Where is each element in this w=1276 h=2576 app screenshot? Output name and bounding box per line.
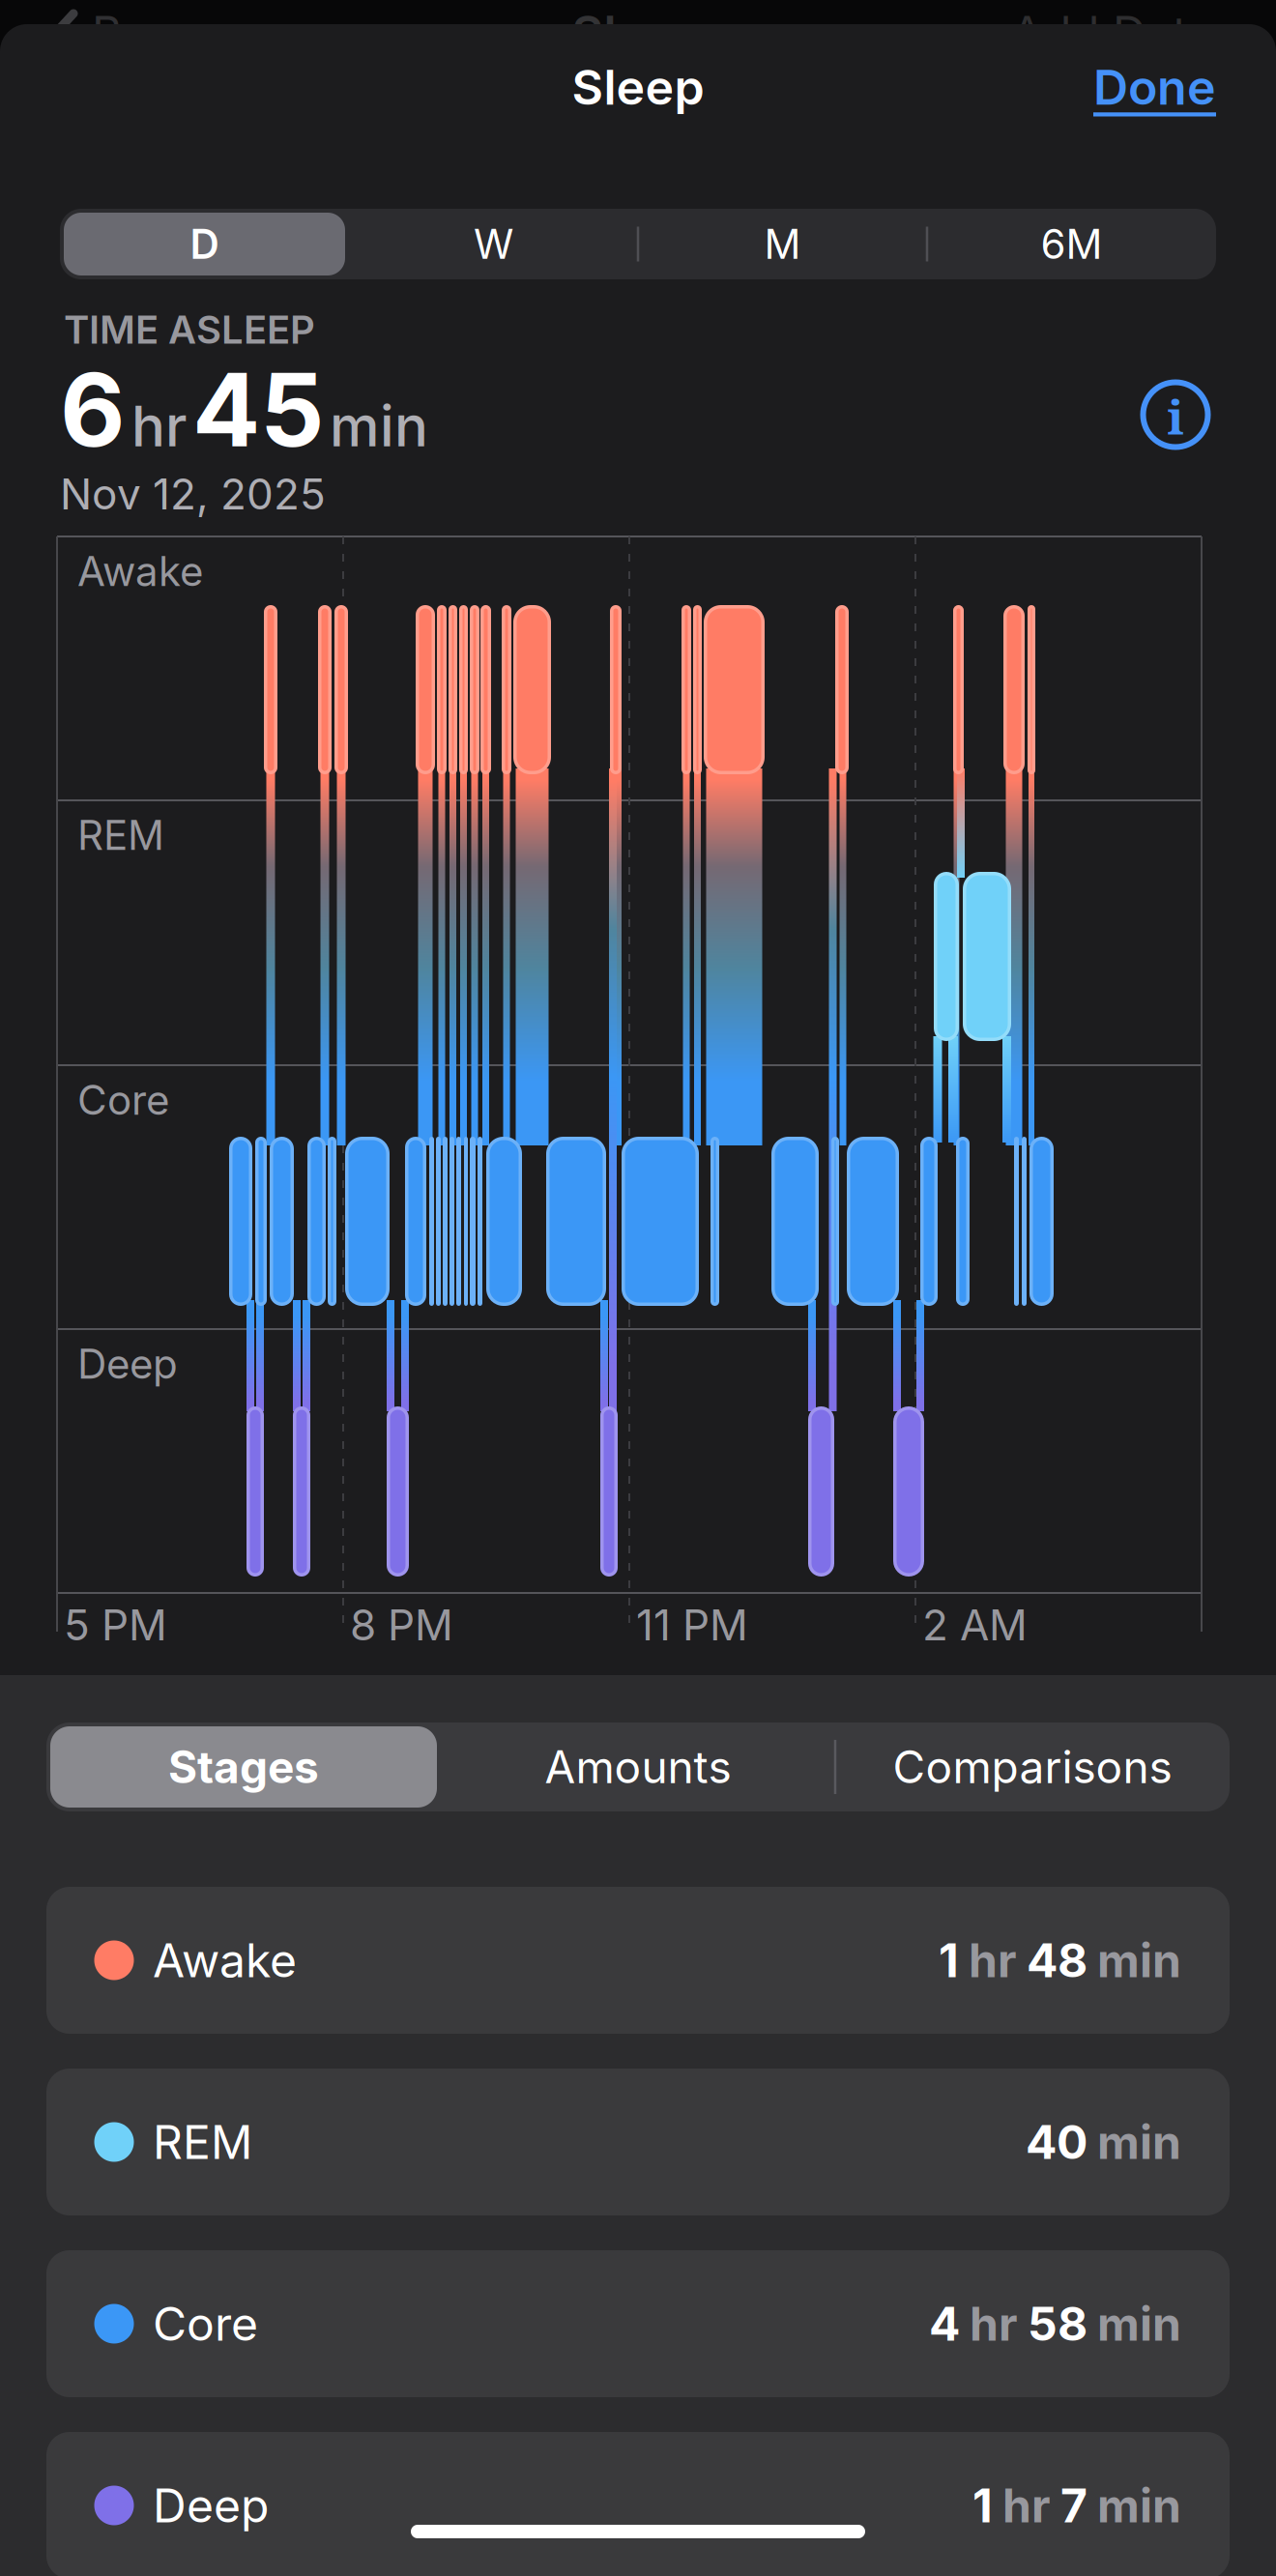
staticText: min [1097, 1933, 1181, 1988]
staticText: Browse [92, 6, 254, 60]
button[interactable]: Done [926, 43, 1216, 130]
staticText: Stages [168, 1741, 319, 1793]
staticText: Awake [153, 1933, 297, 1988]
button[interactable]: D [61, 209, 348, 279]
staticText: D [190, 220, 219, 268]
staticText: Nov 12, 2025 [60, 469, 326, 519]
staticText: Done [1093, 58, 1216, 116]
staticText: Awake [77, 547, 203, 595]
staticText: Deep [77, 1340, 178, 1388]
button[interactable]: M [639, 209, 926, 279]
staticText: 7 [1060, 2478, 1087, 2533]
staticText: Sleep [572, 4, 704, 61]
staticText: 11 PM [636, 1600, 748, 1650]
staticText: 45 [192, 351, 324, 469]
staticText: 48 [1027, 1933, 1087, 1988]
button[interactable]: Stages [46, 1722, 441, 1811]
staticText: 1 [939, 1933, 959, 1988]
button[interactable]: Comparisons [835, 1722, 1230, 1811]
staticText: 8 PM [350, 1600, 453, 1650]
staticText: REM [77, 811, 164, 859]
button[interactable]: W [350, 209, 637, 279]
staticText: hr [970, 2296, 1018, 2351]
button[interactable]: 6M [928, 209, 1215, 279]
staticText: Sleep [572, 58, 704, 116]
staticText: 6 [60, 351, 126, 469]
staticText: hr [1002, 2478, 1051, 2533]
staticText: 58 [1028, 2296, 1087, 2351]
staticText: 5 PM [64, 1600, 167, 1650]
staticText: Amounts [545, 1741, 731, 1793]
staticText: Core [153, 2296, 258, 2351]
staticText: 40 [1026, 2115, 1087, 2169]
staticText: W [474, 220, 513, 268]
staticText: min [330, 393, 428, 459]
staticText: 2 AM [922, 1600, 1028, 1650]
staticText: Add Data [1011, 6, 1214, 60]
staticText: REM [153, 2115, 252, 2169]
staticText: 1 [972, 2478, 993, 2533]
staticText: M [764, 220, 801, 268]
button[interactable]: Amounts [441, 1722, 835, 1811]
staticText: 6M [1041, 220, 1102, 268]
staticText: i [1167, 384, 1184, 448]
staticText: hr [969, 1933, 1017, 1988]
staticText: hr [131, 393, 187, 459]
staticText: Comparisons [893, 1741, 1172, 1793]
staticText: 4 [929, 2296, 960, 2351]
staticText: min [1097, 2478, 1181, 2533]
staticText: min [1097, 2296, 1181, 2351]
button[interactable]: About Time Asleep [1140, 379, 1211, 450]
staticText: Core [77, 1076, 169, 1124]
staticText: min [1097, 2115, 1181, 2169]
staticText: Deep [153, 2478, 269, 2533]
staticText: TIME ASLEEP [64, 307, 315, 352]
